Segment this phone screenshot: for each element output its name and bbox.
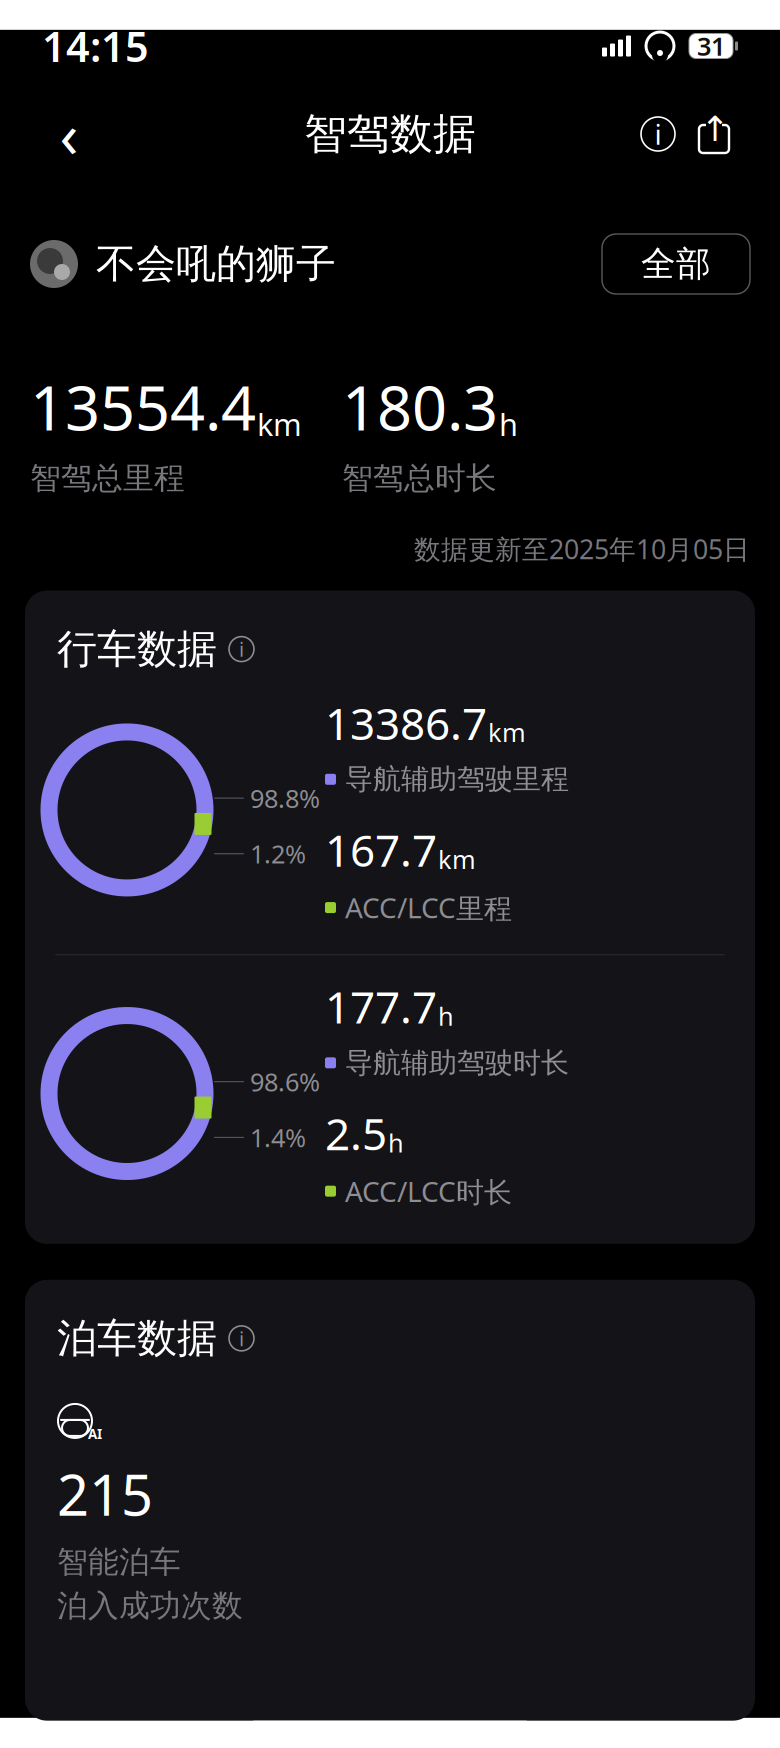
button[interactable]: 全部 [602,234,750,294]
staticText: AI [88,1425,102,1443]
staticText: 98.6% [250,1065,320,1098]
staticText: 泊入成功次数 [57,1587,243,1625]
staticText: 167.7 [325,820,437,879]
staticText: 215 [57,1457,153,1531]
staticText: km [257,404,302,444]
button[interactable]: Share [686,106,742,162]
staticText: 180.3 [342,366,498,447]
staticText: ACC/LCC时长 [345,1172,512,1210]
staticText: 导航辅助驾驶时长 [345,1046,569,1080]
button[interactable]: Back [38,103,100,165]
staticText: h [438,999,454,1033]
staticText: 不会吼的狮子 [96,239,336,288]
staticText: ‹ [59,93,78,175]
staticText: 全部 [641,243,711,285]
staticText: 智驾总里程 [30,459,185,497]
staticText: 2.5 [325,1104,387,1162]
staticText: 行车数据 [57,624,217,674]
staticText: ACC/LCC里程 [345,889,512,926]
button[interactable]: 泊车数据 [25,1280,254,1363]
staticText: 98.8% [250,781,320,815]
staticText: 智驾数据 [304,108,476,160]
staticText: ↑ [700,109,729,149]
staticText: 13554.4 [30,366,256,447]
staticText: 31 [697,29,725,63]
staticText: i [239,1325,244,1352]
staticText: 导航辅助驾驶里程 [345,762,569,796]
staticText: h [388,1126,404,1159]
staticText: 1.2% [250,837,306,870]
staticText: 智驾总时长 [342,459,497,497]
staticText: i [654,115,661,153]
staticText: h [499,404,518,444]
staticText: 泊车数据 [57,1314,217,1363]
staticText: 智能泊车 [57,1543,181,1581]
staticText: km [488,715,526,749]
staticText: 14:15 [42,19,149,73]
staticText: i [239,636,244,662]
button[interactable]: Info [630,106,686,162]
staticText: 177.7 [325,977,437,1036]
button[interactable]: 行车数据 [25,590,254,680]
staticText: 数据更新至2025年10月05日 [414,531,750,566]
staticText: km [438,842,476,876]
staticText: 1.4% [250,1120,306,1154]
staticText: 13386.7 [325,694,487,752]
